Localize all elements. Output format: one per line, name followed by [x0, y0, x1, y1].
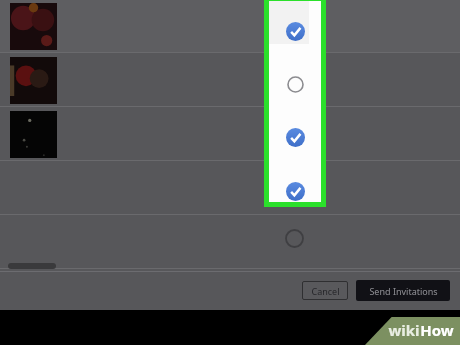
button[interactable] — [0, 215, 460, 269]
button[interactable] — [0, 53, 460, 107]
button[interactable] — [8, 263, 56, 269]
staticText: How — [420, 320, 454, 340]
staticText: wiki — [388, 320, 420, 340]
button[interactable]: Selected — [284, 20, 306, 42]
button[interactable]: Select recipient — [284, 228, 305, 249]
button[interactable] — [0, 0, 460, 53]
button[interactable] — [0, 161, 460, 215]
staticText: Cancel — [311, 285, 340, 297]
button[interactable]: Not selected — [284, 73, 306, 95]
staticText: Send Invitations — [369, 285, 438, 297]
button[interactable]: Cancel — [302, 281, 348, 300]
button[interactable]: Selected — [269, 1, 321, 202]
button[interactable]: Selected — [284, 126, 306, 148]
button[interactable] — [0, 107, 460, 161]
button[interactable]: Send Invitations — [356, 280, 450, 301]
button[interactable]: Selected — [284, 180, 306, 202]
